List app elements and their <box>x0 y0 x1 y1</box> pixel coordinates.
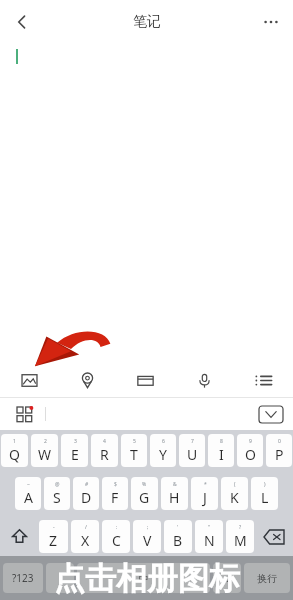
staticText: ' <box>177 524 179 531</box>
button[interactable]: Voice input <box>175 363 234 397</box>
staticText: - <box>53 524 55 531</box>
button[interactable]: # <box>73 477 99 510</box>
staticText: I <box>219 445 224 464</box>
button[interactable]: ' <box>164 520 192 553</box>
staticText: O <box>245 445 256 464</box>
button[interactable]: ? <box>226 520 254 553</box>
staticText: 4 <box>103 438 106 445</box>
button[interactable]: Apps <box>9 399 39 429</box>
staticText: W <box>38 445 52 464</box>
staticText: ) <box>264 481 266 488</box>
staticText: U <box>187 445 198 464</box>
staticText: F <box>111 488 119 507</box>
staticText: " <box>208 524 211 531</box>
button[interactable]: 4 <box>91 434 118 467</box>
staticText: H <box>169 488 180 507</box>
staticText: $ <box>114 481 117 488</box>
staticText: Z <box>49 531 58 550</box>
staticText: P <box>275 445 284 464</box>
staticText: , <box>59 571 62 585</box>
staticText: N <box>204 531 215 550</box>
staticText: B <box>173 531 183 550</box>
button[interactable]: ; <box>133 520 161 553</box>
button[interactable]: ~ <box>15 477 41 510</box>
staticText: @ <box>55 481 60 488</box>
button[interactable]: Location <box>58 363 116 397</box>
staticText: C <box>112 531 121 550</box>
staticText: 2 <box>44 438 47 445</box>
staticText: S <box>53 488 61 507</box>
staticText: K <box>230 488 239 507</box>
button[interactable]: 1 <box>1 434 28 467</box>
staticText: E <box>71 445 79 464</box>
button[interactable]: % <box>131 477 158 510</box>
button[interactable]: " <box>195 520 223 553</box>
button[interactable]: Back <box>4 4 40 40</box>
staticText: ; <box>147 524 149 531</box>
button[interactable]: & <box>161 477 188 510</box>
button[interactable]: 3 <box>61 434 88 467</box>
staticText: M <box>234 531 247 550</box>
staticText: ( <box>234 481 236 488</box>
staticText: & <box>173 481 177 488</box>
staticText: ? <box>239 524 242 531</box>
staticText: 中 <box>139 572 149 585</box>
staticText: ~ <box>27 481 30 488</box>
staticText: . <box>226 571 229 585</box>
staticText: 0 <box>278 438 281 445</box>
staticText: 笔记 <box>133 13 161 31</box>
staticText: % <box>142 481 147 488</box>
staticText: 9 <box>249 438 252 445</box>
button[interactable]: ( <box>221 477 248 510</box>
button[interactable]: Backspace <box>257 520 291 553</box>
staticText: R <box>100 445 109 464</box>
staticText: T <box>130 445 138 464</box>
staticText: : <box>116 524 118 531</box>
staticText: 1 <box>13 438 16 445</box>
button[interactable]: Folder <box>116 363 175 397</box>
button[interactable]: : <box>102 520 130 553</box>
staticText: 点击相册图标 <box>54 559 240 598</box>
button[interactable]: ?123 <box>3 563 43 593</box>
button[interactable]: Insert image <box>0 363 58 397</box>
staticText: ?123 <box>12 571 34 585</box>
staticText: Q <box>9 445 20 464</box>
button[interactable]: , <box>46 563 74 593</box>
staticText: 换行 <box>257 572 277 585</box>
staticText: G <box>139 488 150 507</box>
staticText: Y <box>159 445 167 464</box>
staticText: 8 <box>220 438 223 445</box>
button[interactable]: / <box>71 520 99 553</box>
button[interactable]: * <box>191 477 218 510</box>
button[interactable]: List <box>234 363 293 397</box>
button[interactable]: 6 <box>150 434 176 467</box>
button[interactable]: Shift <box>2 520 36 553</box>
button[interactable]: 7 <box>179 434 205 467</box>
staticText: 3 <box>74 438 77 445</box>
staticText: 7 <box>191 438 194 445</box>
staticText: 6 <box>162 438 165 445</box>
button[interactable]: Collapse keyboard <box>258 405 284 424</box>
button[interactable]: 换行 <box>244 563 290 593</box>
button[interactable]: 0 <box>266 434 292 467</box>
staticText: 5 <box>133 438 136 445</box>
staticText: * <box>204 481 207 488</box>
button[interactable]: . <box>213 563 241 593</box>
staticText: X <box>81 531 90 550</box>
button[interactable]: 2 <box>31 434 58 467</box>
button[interactable]: More options <box>253 4 289 40</box>
button[interactable]: - <box>39 520 68 553</box>
staticText: A <box>24 488 33 507</box>
staticText: / <box>85 524 87 531</box>
staticText: # <box>85 481 89 488</box>
button[interactable]: 8 <box>208 434 234 467</box>
button[interactable]: $ <box>102 477 128 510</box>
staticText: J <box>203 488 207 507</box>
button[interactable]: @ <box>44 477 70 510</box>
staticText: D <box>81 488 92 507</box>
button[interactable]: 中 <box>77 563 210 593</box>
button[interactable]: ) <box>251 477 278 510</box>
staticText: V <box>143 531 152 550</box>
button[interactable]: 9 <box>237 434 263 467</box>
button[interactable]: 5 <box>121 434 147 467</box>
